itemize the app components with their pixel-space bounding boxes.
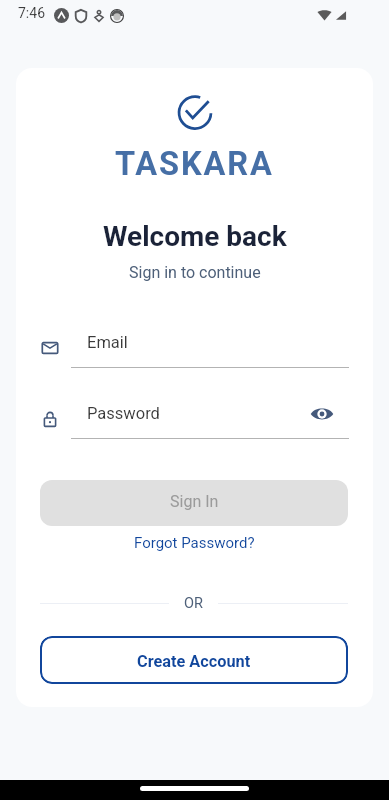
button[interactable]: Email: [40, 331, 349, 367]
staticText: TASKARA: [115, 145, 274, 179]
staticText: Forgot Password?: [134, 534, 255, 552]
staticText: Create Account: [137, 652, 251, 671]
button[interactable]: Forgot Password?: [40, 529, 348, 557]
staticText: OR: [184, 595, 203, 612]
button[interactable]: Password: [40, 402, 349, 438]
staticText: Welcome back: [103, 220, 287, 252]
staticText: Sign in to continue: [129, 263, 261, 282]
staticText: Email: [87, 333, 128, 352]
staticText: Sign In: [170, 492, 219, 511]
staticText: Password: [87, 404, 160, 423]
button[interactable]: Sign In: [40, 480, 348, 526]
staticText: 7:46: [18, 5, 45, 21]
button[interactable]: Create Account: [40, 636, 348, 684]
button[interactable]: Show password: [310, 402, 334, 426]
